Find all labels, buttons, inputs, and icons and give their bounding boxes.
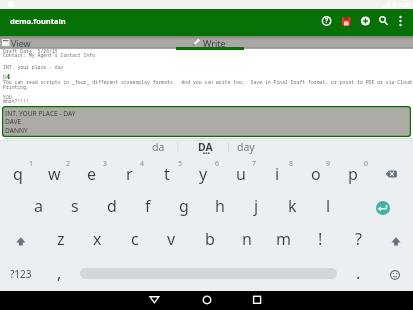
button[interactable] xyxy=(377,223,413,255)
button[interactable]: k xyxy=(274,190,311,222)
staticText: INT. your place - day xyxy=(3,64,64,71)
button[interactable] xyxy=(394,13,408,29)
button[interactable]: h xyxy=(201,190,238,222)
staticText: 3 xyxy=(103,159,108,169)
button[interactable] xyxy=(191,291,222,310)
button[interactable] xyxy=(139,291,170,310)
staticText: Printing. xyxy=(3,84,29,91)
staticText: t xyxy=(164,163,170,185)
staticText: c xyxy=(131,228,139,250)
staticText: 2 xyxy=(66,159,71,169)
button[interactable]: w xyxy=(36,158,73,190)
staticText: INT. YOUR PLACE - DAY xyxy=(5,109,76,118)
button[interactable]: b xyxy=(191,223,228,255)
button[interactable]: , xyxy=(44,257,74,289)
staticText: 5 xyxy=(178,159,183,169)
button[interactable]: ! xyxy=(302,223,339,255)
staticText: ?123 xyxy=(10,267,32,281)
staticText: d xyxy=(107,195,117,217)
staticText: ! xyxy=(318,228,323,250)
button[interactable]: r xyxy=(111,158,148,190)
staticText: g xyxy=(179,195,189,217)
button[interactable]: p xyxy=(334,158,371,190)
staticText: r xyxy=(126,163,133,185)
button[interactable]: . xyxy=(343,257,373,289)
button[interactable]: ? xyxy=(340,223,377,255)
staticText: What?!!!! xyxy=(3,98,29,105)
staticText: , xyxy=(57,262,62,284)
staticText: Draft Date: 5/26/15 xyxy=(3,48,58,55)
staticText: View xyxy=(11,37,31,49)
staticText: n xyxy=(242,228,252,250)
button[interactable]: day xyxy=(226,139,266,155)
staticText: u xyxy=(236,163,246,185)
button[interactable] xyxy=(0,36,180,49)
staticText: 8 xyxy=(289,159,294,169)
button[interactable]: x xyxy=(79,223,116,255)
staticText: Contact: My Agent's Contact Info xyxy=(3,52,96,59)
button[interactable]: v xyxy=(153,223,190,255)
staticText: 1 xyxy=(29,159,34,169)
staticText: e xyxy=(87,163,97,185)
staticText: day xyxy=(237,140,255,154)
button[interactable]: e xyxy=(73,158,110,190)
staticText: 0 xyxy=(364,159,369,169)
button[interactable] xyxy=(2,106,411,117)
button[interactable] xyxy=(180,36,413,49)
staticText: v xyxy=(167,228,176,250)
staticText: s xyxy=(71,195,79,217)
staticText: 4 xyxy=(140,159,145,169)
staticText: ? xyxy=(325,16,329,25)
button[interactable]: da xyxy=(138,139,178,155)
button[interactable]: j xyxy=(238,190,275,222)
button[interactable]: i xyxy=(259,158,296,190)
staticText: 6 xyxy=(215,159,220,169)
button[interactable] xyxy=(2,223,39,255)
button[interactable]: ?123 xyxy=(4,258,38,290)
button[interactable]: m xyxy=(265,223,302,255)
button[interactable]: DA xyxy=(185,139,225,155)
staticText: p xyxy=(348,163,358,185)
button[interactable]: o xyxy=(297,158,334,190)
staticText: q xyxy=(13,163,23,185)
button[interactable]: t xyxy=(148,158,185,190)
button[interactable]: c xyxy=(116,223,153,255)
button[interactable]: q xyxy=(0,158,36,190)
button[interactable]: d xyxy=(93,190,130,222)
button[interactable]: f xyxy=(129,190,166,222)
button[interactable] xyxy=(2,127,411,137)
button[interactable] xyxy=(376,259,413,290)
button[interactable] xyxy=(374,158,412,190)
staticText: b xyxy=(205,228,215,250)
staticText: YOU xyxy=(3,94,12,101)
staticText: 7 xyxy=(252,159,257,169)
staticText: x xyxy=(93,228,102,250)
button[interactable]: a xyxy=(20,190,57,222)
staticText: You can read scripts in _four_ different… xyxy=(3,79,412,86)
button[interactable]: n xyxy=(228,223,265,255)
staticText: z xyxy=(57,228,65,250)
button[interactable]: s xyxy=(56,190,93,222)
button[interactable] xyxy=(339,13,353,29)
button[interactable] xyxy=(358,13,372,29)
button[interactable]: z xyxy=(42,223,79,255)
staticText: . xyxy=(356,262,361,284)
button[interactable]: y xyxy=(185,158,222,190)
staticText: w xyxy=(48,163,61,185)
button[interactable] xyxy=(376,13,390,29)
staticText: h xyxy=(215,195,225,217)
staticText: f xyxy=(145,195,151,217)
button[interactable] xyxy=(376,201,390,215)
staticText: a xyxy=(34,195,43,217)
staticText: j xyxy=(254,195,259,217)
button[interactable] xyxy=(2,117,411,128)
button[interactable]: l xyxy=(310,190,347,222)
button[interactable]: g xyxy=(165,190,202,222)
staticText: k xyxy=(288,195,297,217)
staticText: ? xyxy=(355,228,362,250)
button[interactable] xyxy=(320,13,334,29)
staticText: DA xyxy=(198,140,213,154)
button[interactable]: u xyxy=(222,158,259,190)
button[interactable] xyxy=(242,291,273,310)
